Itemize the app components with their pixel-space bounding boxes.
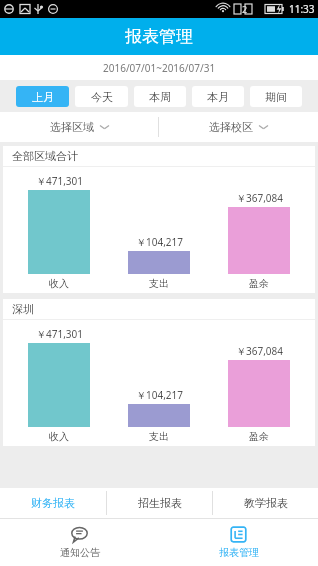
staticText: 支出 [149, 430, 169, 443]
button[interactable]: 财务报表 [0, 488, 106, 518]
button[interactable]: 教学报表 [213, 488, 318, 518]
button[interactable]: 报表管理 [159, 518, 318, 566]
button[interactable]: 期间 [250, 86, 302, 107]
staticText: 财务报表 [31, 496, 75, 510]
button[interactable]: 招生报表 [107, 488, 212, 518]
button[interactable]: 本月 [192, 86, 244, 107]
staticText: ￥471,301 [36, 174, 83, 188]
staticText: 选择校区 [209, 120, 253, 134]
staticText: 2016/07/01~2016/07/31 [103, 61, 216, 75]
staticText: 深圳 [12, 302, 34, 316]
button[interactable]: 上月 [16, 86, 69, 107]
staticText: 招生报表 [138, 496, 182, 510]
staticText: ￥104,217 [136, 388, 183, 402]
staticText: 盈余 [249, 430, 269, 443]
staticText: 收入 [49, 277, 69, 290]
staticText: 选择区域 [50, 120, 94, 134]
button[interactable]: 今天 [75, 86, 128, 107]
button[interactable]: 选择区域 [0, 112, 158, 142]
staticText: 盈余 [249, 277, 269, 290]
staticText: 本周 [149, 90, 171, 104]
button[interactable]: 选择校区 [159, 112, 318, 142]
staticText: ￥367,084 [236, 191, 283, 205]
staticText: ￥104,217 [136, 235, 183, 249]
staticText: 通知公告 [60, 546, 100, 559]
button[interactable]: 本周 [134, 86, 186, 107]
staticText: 收入 [49, 430, 69, 443]
button[interactable]: 通知公告 [0, 518, 159, 566]
staticText: 期间 [265, 90, 287, 104]
staticText: 11:33 [289, 2, 315, 16]
staticText: 全部区域合计 [12, 149, 78, 163]
staticText: 2 [242, 3, 248, 15]
staticText: 上月 [32, 90, 54, 104]
staticText: 报表管理 [219, 546, 259, 559]
staticText: 报表管理 [125, 26, 193, 47]
staticText: 支出 [149, 277, 169, 290]
staticText: 本月 [207, 90, 229, 104]
staticText: 今天 [91, 90, 113, 104]
staticText: 教学报表 [244, 496, 288, 510]
staticText: ￥367,084 [236, 344, 283, 358]
staticText: ￥471,301 [36, 327, 83, 341]
